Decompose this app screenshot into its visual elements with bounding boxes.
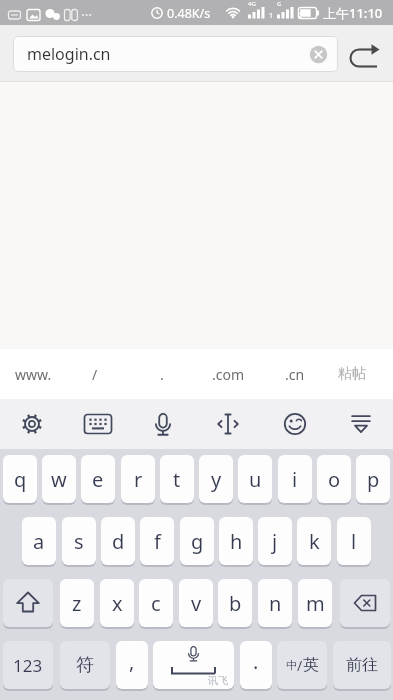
button[interactable]: z [60, 579, 94, 627]
staticText: f [154, 528, 161, 555]
staticText: k [309, 528, 320, 555]
staticText: i [292, 466, 298, 493]
staticText: n [269, 590, 282, 617]
staticText: .cn [285, 365, 305, 384]
staticText: 0.48K/s [167, 5, 211, 22]
staticText: 英 [303, 655, 319, 675]
button[interactable]: v [179, 579, 213, 627]
staticText: 123 [13, 654, 43, 677]
staticText: m [306, 590, 325, 617]
button[interactable]: w [42, 455, 76, 503]
button[interactable]: g [180, 517, 214, 565]
staticText: x [112, 590, 123, 617]
button[interactable]: 符 [60, 641, 110, 689]
button[interactable]: , [116, 641, 148, 689]
button[interactable] [141, 402, 185, 446]
staticText: 符 [76, 654, 94, 677]
staticText: 讯飞 [208, 674, 228, 687]
button[interactable]: y [199, 455, 233, 503]
button[interactable]: b [218, 579, 252, 627]
button[interactable]: m [298, 579, 332, 627]
button[interactable] [10, 402, 54, 446]
button[interactable]: j [258, 517, 292, 565]
button[interactable]: l [337, 517, 371, 565]
button[interactable]: 讯飞 [153, 641, 234, 689]
staticText: a [33, 528, 45, 555]
staticText: h [230, 528, 243, 555]
staticText: e [92, 466, 104, 493]
button[interactable]: 中 [277, 641, 327, 689]
button[interactable]: .cn [273, 360, 317, 388]
button[interactable]: f [140, 517, 174, 565]
staticText: 2 [298, 11, 303, 21]
button[interactable] [206, 402, 250, 446]
staticText: b [229, 590, 242, 617]
button[interactable]: r [121, 455, 155, 503]
staticText: G [277, 0, 282, 8]
button[interactable]: a [22, 517, 56, 565]
button[interactable] [340, 579, 390, 627]
staticText: 粘帖 [338, 365, 366, 383]
staticText: u [249, 466, 262, 493]
button[interactable]: o [317, 455, 351, 503]
button[interactable]: www. [4, 360, 62, 388]
button[interactable]: s [62, 517, 96, 565]
staticText: / [92, 365, 98, 384]
staticText: .com [212, 365, 245, 384]
button[interactable]: n [258, 579, 292, 627]
staticText: w [51, 466, 67, 493]
staticText: d [112, 528, 125, 555]
button[interactable] [339, 402, 383, 446]
button[interactable]: .com [202, 360, 254, 388]
staticText: 中 [286, 658, 297, 672]
button[interactable]: q [3, 455, 37, 503]
staticText: j [272, 528, 278, 555]
staticText: 4G [248, 0, 256, 8]
button[interactable]: 粘帖 [328, 360, 376, 388]
button[interactable]: u [238, 455, 272, 503]
staticText: o [328, 466, 341, 493]
button[interactable]: 123 [3, 641, 53, 689]
button[interactable] [348, 39, 384, 73]
staticText: 1 [269, 11, 274, 21]
staticText: . [253, 648, 259, 675]
button[interactable] [3, 579, 53, 627]
button[interactable]: . [142, 360, 182, 388]
staticText: , [129, 648, 135, 675]
staticText: 上午11:10 [323, 4, 383, 22]
staticText: z [72, 590, 82, 617]
staticText: 前往 [346, 655, 378, 675]
button[interactable]: t [160, 455, 194, 503]
staticText: s [74, 528, 84, 555]
button[interactable] [76, 402, 120, 446]
button[interactable]: h [219, 517, 253, 565]
button[interactable]: x [100, 579, 134, 627]
button[interactable]: e [81, 455, 115, 503]
staticText: melogin.cn [27, 43, 111, 65]
button[interactable]: melogin.cn [13, 36, 338, 72]
staticText: . [160, 365, 164, 384]
staticText: t [173, 466, 181, 493]
button[interactable]: 前往 [333, 641, 391, 689]
staticText: p [367, 466, 380, 493]
button[interactable]: k [297, 517, 331, 565]
staticText: g [191, 528, 204, 555]
staticText: r [134, 466, 143, 493]
button[interactable]: p [356, 455, 390, 503]
button[interactable] [308, 44, 329, 65]
staticText: www. [15, 365, 52, 384]
button[interactable]: c [139, 579, 173, 627]
button[interactable]: / [75, 360, 115, 388]
staticText: / [297, 656, 303, 675]
staticText: v [191, 590, 202, 617]
staticText: q [14, 466, 27, 493]
button[interactable] [273, 402, 317, 446]
button[interactable]: i [278, 455, 312, 503]
button[interactable]: d [101, 517, 135, 565]
staticText: y [211, 466, 222, 493]
staticText: c [151, 590, 161, 617]
staticText: l [351, 528, 357, 555]
button[interactable]: . [240, 641, 272, 689]
